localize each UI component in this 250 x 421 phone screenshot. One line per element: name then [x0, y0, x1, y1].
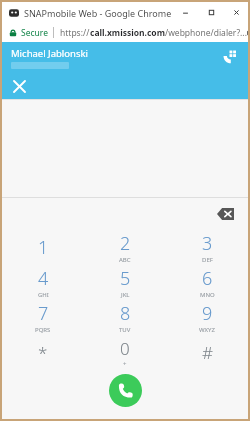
- staticText: *: [38, 341, 48, 364]
- staticText: Secure: [21, 27, 48, 39]
- button[interactable]: 3: [166, 230, 248, 265]
- button[interactable]: Michael Jablonski: [2, 42, 248, 72]
- staticText: 5: [120, 266, 131, 291]
- button[interactable]: Close: [224, 2, 248, 23]
- staticText: 8: [120, 301, 131, 326]
- button[interactable]: 6: [166, 265, 248, 300]
- staticText: 7: [38, 301, 49, 326]
- staticText: 3: [202, 231, 213, 256]
- staticText: #: [202, 341, 213, 364]
- staticText: /webphone/dialer?...: [165, 27, 247, 39]
- staticText: +: [123, 360, 127, 368]
- button[interactable]: 9: [166, 300, 248, 335]
- staticText: call.xmission.com: [90, 27, 165, 39]
- button[interactable]: *: [2, 335, 84, 370]
- button[interactable]: Call: [109, 374, 142, 407]
- button[interactable]: Transfer call: [214, 42, 244, 70]
- staticText: WXYZ: [199, 326, 215, 334]
- button[interactable]: 4: [2, 265, 84, 300]
- staticText: PQRS: [35, 326, 51, 334]
- button[interactable]: Close: [6, 73, 32, 99]
- button[interactable]: 5: [84, 265, 166, 300]
- staticText: 1: [38, 235, 49, 260]
- staticText: ABC: [119, 256, 131, 264]
- staticText: GHI: [38, 291, 49, 299]
- button[interactable]: 2: [84, 230, 166, 265]
- staticText: 4: [38, 266, 49, 291]
- staticText: 9: [202, 301, 213, 326]
- button[interactable]: 7: [2, 300, 84, 335]
- staticText: https://: [60, 27, 90, 39]
- button[interactable]: Maximize: [198, 2, 224, 23]
- button[interactable]: 1: [2, 230, 84, 265]
- staticText: TUV: [119, 326, 131, 334]
- button[interactable]: 0: [84, 335, 166, 370]
- staticText: JKL: [121, 291, 130, 299]
- button[interactable]: Minimize: [172, 2, 198, 23]
- button[interactable]: Backspace: [212, 203, 238, 225]
- staticText: 2: [120, 231, 131, 256]
- button[interactable]: #: [166, 335, 248, 370]
- button[interactable]: 8: [84, 300, 166, 335]
- staticText: MNO: [200, 291, 215, 299]
- staticText: 0: [120, 337, 130, 360]
- staticText: 6: [202, 266, 213, 291]
- staticText: DEF: [202, 256, 213, 264]
- staticText: SNAPmobile Web - Google Chrome: [24, 7, 172, 19]
- button[interactable]: Camera access: [247, 24, 248, 42]
- staticText: Michael Jablonski: [11, 47, 89, 60]
